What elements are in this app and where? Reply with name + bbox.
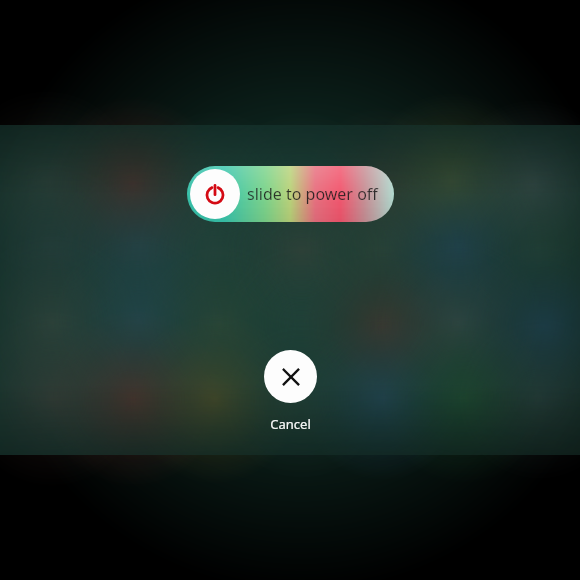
button[interactable]: Slide to power off <box>190 169 240 219</box>
button[interactable]: slide to power off <box>187 166 394 222</box>
staticText: slide to power off <box>247 183 378 205</box>
button[interactable]: Cancel <box>264 350 317 403</box>
button[interactable]: Cancel <box>270 415 311 433</box>
